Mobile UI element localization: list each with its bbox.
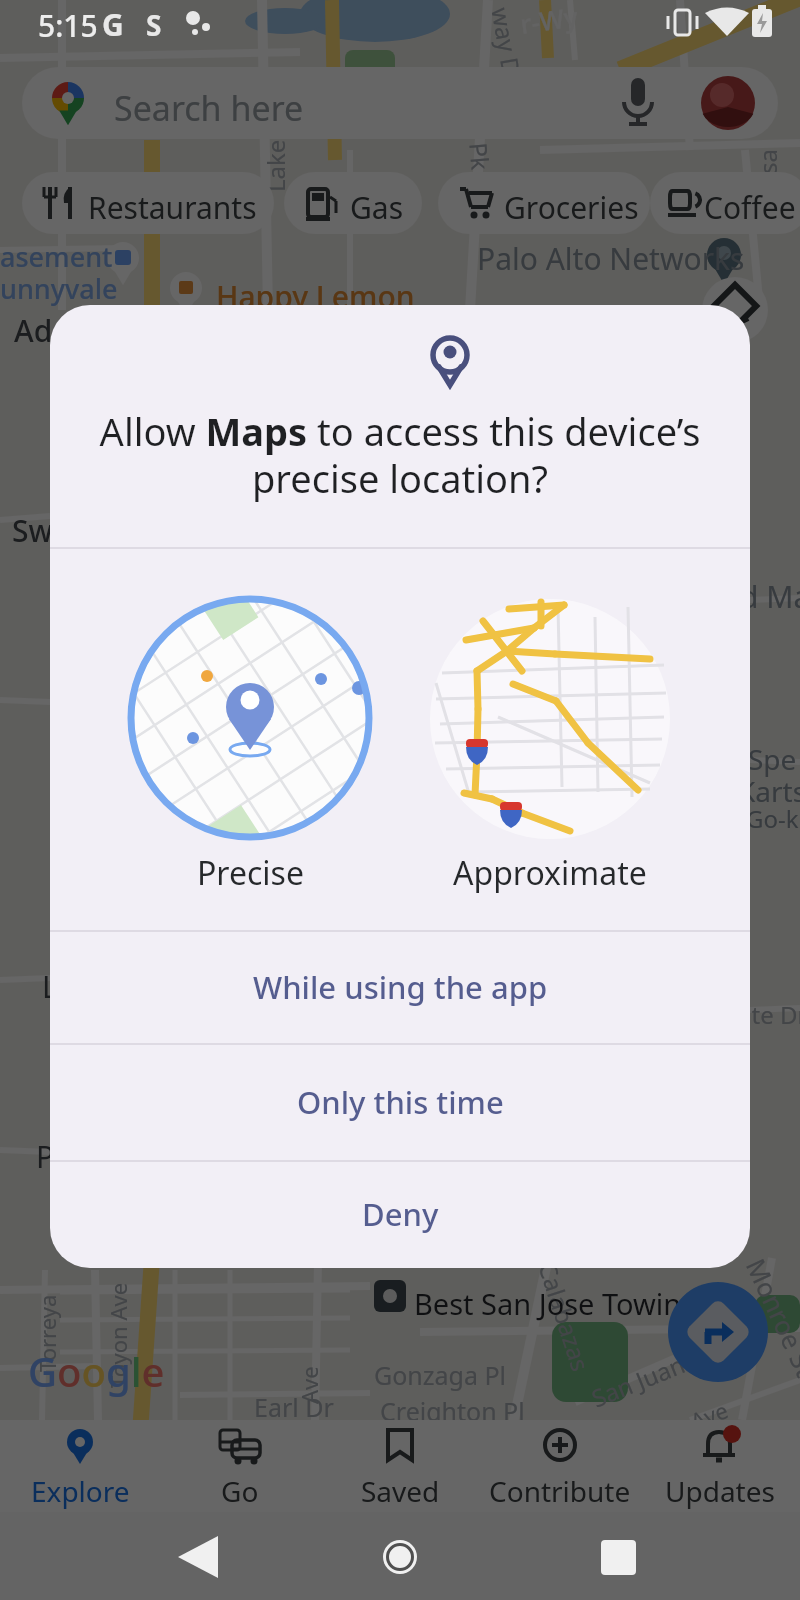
- staticText: unnyvale: [0, 270, 118, 307]
- staticText: Approximate: [453, 851, 647, 895]
- staticText: San Juan Av: [587, 1334, 721, 1414]
- button[interactable]: Updates: [640, 1420, 800, 1512]
- staticText: Spe: [748, 740, 797, 778]
- staticText: Deny: [362, 1193, 439, 1235]
- button[interactable]: Saved: [320, 1420, 480, 1512]
- staticText: Creighton Pl: [380, 1394, 525, 1428]
- staticText: ate Dr: [738, 998, 800, 1031]
- staticText: Ave: [294, 1366, 324, 1404]
- button[interactable]: While using the app: [50, 930, 750, 1043]
- button[interactable]: Deny: [50, 1160, 750, 1268]
- staticText: Pk: [462, 141, 498, 172]
- staticText: Only this time: [297, 1081, 504, 1123]
- staticText: Google: [28, 1344, 165, 1398]
- button[interactable]: Coffee: [650, 172, 800, 234]
- staticText: Swa: [12, 510, 70, 551]
- staticText: Precise: [197, 851, 304, 895]
- button[interactable]: Groceries: [438, 172, 650, 234]
- staticText: While using the app: [253, 966, 548, 1008]
- staticText: Allow Maps to access this device’s preci…: [50, 405, 750, 504]
- staticText: G: [102, 4, 124, 45]
- staticText: Coffee: [704, 187, 796, 228]
- staticText: asement: [0, 238, 113, 275]
- button[interactable]: [430, 585, 670, 915]
- staticText: Calabazas: [531, 1258, 598, 1375]
- staticText: P: [36, 1136, 55, 1177]
- staticText: d Ma: [740, 576, 800, 617]
- button[interactable]: Contribute: [480, 1420, 640, 1512]
- staticText: S: [146, 6, 162, 44]
- button[interactable]: [150, 1512, 260, 1600]
- button[interactable]: Search here: [22, 67, 778, 139]
- staticText: Gonzaga Pl: [374, 1358, 507, 1392]
- staticText: 5:15: [38, 5, 98, 46]
- button[interactable]: [345, 1512, 455, 1600]
- staticText: Earl Dr: [254, 1390, 334, 1424]
- staticText: Monroe St: [739, 1253, 800, 1382]
- staticText: Search here: [114, 85, 304, 131]
- staticText: Palo Alto Networks: [477, 238, 745, 279]
- staticText: Go-k: [746, 802, 799, 835]
- staticText: rsa: [751, 149, 784, 184]
- button[interactable]: [130, 585, 370, 915]
- staticText: Groceries: [504, 187, 639, 228]
- staticText: Torreya: [32, 1294, 62, 1372]
- staticText: Happy Lemon: [216, 276, 415, 317]
- staticText: Ave: [686, 1394, 732, 1436]
- button[interactable]: Only this time: [50, 1043, 750, 1160]
- staticText: Lakesi: [259, 121, 292, 192]
- button[interactable]: Go: [160, 1420, 320, 1512]
- staticText: Go: [221, 1472, 259, 1510]
- staticText: Contribute: [489, 1472, 631, 1510]
- staticText: L: [42, 966, 58, 1007]
- staticText: Restaurants: [88, 187, 257, 228]
- staticText: Explore: [31, 1472, 130, 1510]
- staticText: way Dr: [484, 5, 531, 88]
- staticText: Toyon Ave: [103, 1282, 133, 1388]
- staticText: r-Wy: [518, 0, 580, 41]
- button[interactable]: Explore: [0, 1420, 160, 1512]
- staticText: Add: [14, 310, 71, 351]
- button[interactable]: Gas: [284, 172, 422, 234]
- staticText: Saved: [361, 1472, 440, 1510]
- button[interactable]: Restaurants: [22, 172, 274, 234]
- staticText: Best San Jose Towing: [414, 1284, 700, 1323]
- button[interactable]: [668, 1282, 768, 1382]
- staticText: Gas: [350, 187, 404, 228]
- staticText: Karts: [738, 772, 800, 810]
- staticText: Updates: [665, 1472, 775, 1510]
- button[interactable]: [563, 1512, 673, 1600]
